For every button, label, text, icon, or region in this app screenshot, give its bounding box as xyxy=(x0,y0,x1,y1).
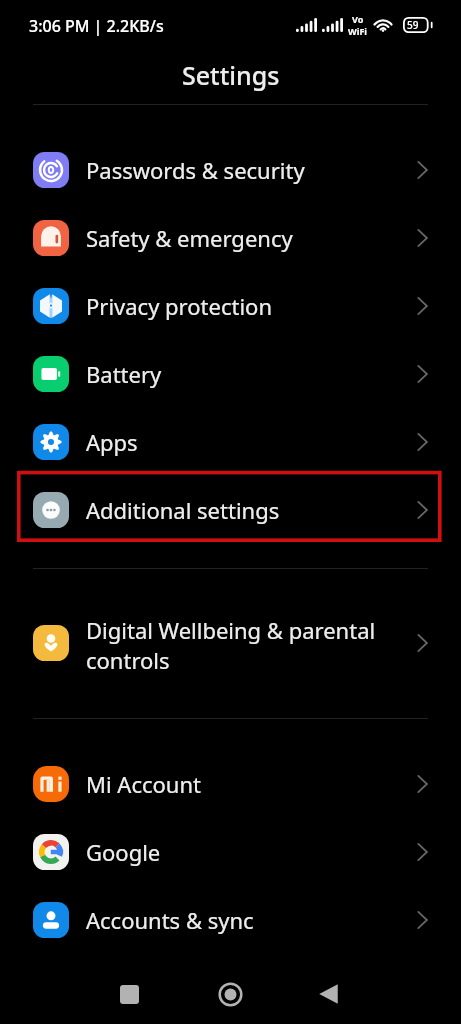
staticText: Battery xyxy=(86,359,162,389)
button[interactable]: Home xyxy=(180,964,280,1024)
button[interactable]: Passwords & security xyxy=(0,136,461,204)
button[interactable]: Privacy protection xyxy=(0,272,461,340)
staticText: Digital Wellbeing & parental controls xyxy=(86,615,376,674)
staticText: Apps xyxy=(86,427,138,457)
staticText: Settings xyxy=(182,58,280,92)
button[interactable]: Recent apps xyxy=(79,964,179,1024)
staticText: Accounts & sync xyxy=(86,905,254,935)
button[interactable]: Digital Wellbeing & parental controls xyxy=(0,584,461,674)
staticText: Safety & emergency xyxy=(86,223,293,253)
staticText: Vo xyxy=(352,13,364,25)
staticText: 59 xyxy=(407,18,419,32)
button[interactable]: Apps xyxy=(0,408,461,476)
staticText: Additional settings xyxy=(86,495,280,525)
button[interactable]: Battery xyxy=(0,340,461,408)
button[interactable]: Back xyxy=(278,964,378,1024)
button[interactable]: Mi Account xyxy=(0,750,461,818)
button[interactable]: Additional settings xyxy=(0,476,461,544)
staticText: Privacy protection xyxy=(86,291,273,321)
staticText: 3:06 PM | 2.2KB/s xyxy=(29,15,164,37)
staticText: Passwords & security xyxy=(86,155,305,185)
button[interactable]: Google xyxy=(0,818,461,886)
button[interactable]: Safety & emergency xyxy=(0,204,461,272)
staticText: Mi Account xyxy=(86,769,201,799)
button[interactable]: Accounts & sync xyxy=(0,886,461,954)
staticText: WiFi xyxy=(348,25,368,37)
staticText: Google xyxy=(86,837,161,867)
